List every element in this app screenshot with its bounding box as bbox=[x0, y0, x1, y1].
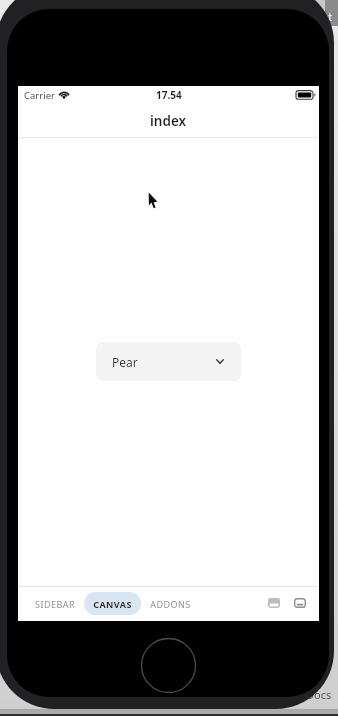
staticText: Pear bbox=[112, 354, 138, 370]
staticText: at bbox=[322, 9, 333, 24]
button[interactable]: Pear bbox=[96, 342, 241, 381]
staticText: SIDEBAR bbox=[35, 598, 75, 610]
button[interactable]: CANVAS bbox=[84, 592, 141, 615]
staticText: index bbox=[150, 112, 187, 130]
staticText: Carrier bbox=[24, 89, 55, 102]
staticText: CANVAS bbox=[93, 598, 132, 610]
button[interactable]: SIDEBAR bbox=[26, 592, 84, 615]
button[interactable]: Change size bbox=[291, 594, 309, 612]
button[interactable]: Change background bbox=[265, 594, 283, 612]
staticText: 17.54 bbox=[156, 88, 182, 102]
staticText: Docs bbox=[306, 687, 332, 702]
button[interactable]: ADDONS bbox=[141, 592, 200, 615]
staticText: ADDONS bbox=[150, 598, 191, 610]
